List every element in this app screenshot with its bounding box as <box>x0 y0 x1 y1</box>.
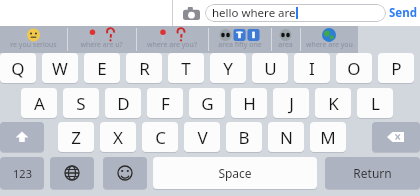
button[interactable]: A <box>21 88 57 118</box>
button[interactable]: Q <box>0 53 36 83</box>
button[interactable]: O <box>336 53 372 83</box>
staticText: V <box>197 126 208 149</box>
staticText: S <box>76 92 86 115</box>
button[interactable]: L <box>357 88 393 118</box>
staticText: M <box>320 126 336 149</box>
staticText: H <box>243 92 256 115</box>
staticText: where are you? <box>147 40 197 50</box>
button[interactable]: J <box>273 88 309 118</box>
button[interactable]: Return <box>325 157 420 189</box>
button[interactable]: Send <box>387 3 419 23</box>
button[interactable]: Y <box>210 53 246 83</box>
staticText: O <box>347 57 361 80</box>
button[interactable]: Emoji <box>103 157 147 189</box>
staticText: where are you <box>306 40 353 50</box>
staticText: N <box>280 126 293 149</box>
staticText: F <box>161 92 170 115</box>
staticText: hello where are <box>212 5 296 21</box>
button[interactable]: re you serious <box>0 26 67 53</box>
button[interactable]: B <box>226 122 262 152</box>
staticText: where are u? <box>80 40 123 50</box>
button[interactable]: N <box>268 122 304 152</box>
staticText: E <box>97 57 107 80</box>
button[interactable]: U <box>252 53 288 83</box>
staticText: area <box>278 40 293 50</box>
staticText: Y <box>223 57 233 80</box>
button[interactable]: hello where are <box>205 4 386 22</box>
button[interactable]: X <box>100 122 136 152</box>
staticText: A <box>34 92 45 115</box>
button[interactable]: T <box>168 53 204 83</box>
button[interactable]: W <box>42 53 78 83</box>
staticText: re you serious <box>10 40 57 50</box>
staticText: D <box>117 92 130 115</box>
button[interactable]: where are u? <box>67 26 136 53</box>
staticText: W <box>52 57 68 80</box>
button[interactable]: M <box>310 122 346 152</box>
staticText: 123 <box>13 166 32 181</box>
button[interactable]: Space <box>153 157 317 189</box>
staticText: U <box>264 57 277 80</box>
staticText: I <box>309 57 315 80</box>
staticText: Z <box>71 126 81 149</box>
button[interactable]: I <box>294 53 330 83</box>
staticText: Return <box>353 165 392 181</box>
button[interactable]: S <box>63 88 99 118</box>
button[interactable]: P <box>378 53 414 83</box>
button[interactable]: G <box>189 88 225 118</box>
button[interactable]: area fifty one <box>208 26 271 53</box>
button[interactable]: F <box>147 88 183 118</box>
staticText: R <box>139 57 150 80</box>
button[interactable]: K <box>315 88 351 118</box>
staticText: L <box>371 92 380 115</box>
button[interactable]: H <box>231 88 267 118</box>
staticText: T <box>181 57 191 80</box>
staticText: X <box>113 126 123 149</box>
button[interactable]: 123 <box>0 157 44 189</box>
staticText: J <box>289 92 294 115</box>
button[interactable]: area <box>271 26 300 53</box>
button[interactable]: Z <box>58 122 94 152</box>
button[interactable]: Shift <box>0 122 44 152</box>
button[interactable]: V <box>184 122 220 152</box>
button[interactable]: Switch keyboard <box>50 157 94 189</box>
button[interactable]: where are you? <box>136 26 208 53</box>
button[interactable]: Camera <box>180 4 202 22</box>
staticText: Space <box>218 165 252 181</box>
button[interactable]: C <box>142 122 178 152</box>
staticText: C <box>155 126 166 149</box>
staticText: Q <box>11 57 25 80</box>
button[interactable]: D <box>105 88 141 118</box>
button[interactable]: E <box>84 53 120 83</box>
button[interactable]: Backspace <box>372 122 420 152</box>
staticText: G <box>201 92 214 115</box>
button[interactable]: R <box>126 53 162 83</box>
button[interactable]: where are you <box>300 26 358 53</box>
staticText: area fifty one <box>218 40 262 50</box>
staticText: B <box>238 126 250 149</box>
staticText: K <box>328 92 339 115</box>
staticText: P <box>391 57 402 80</box>
staticText: Send <box>389 5 417 21</box>
